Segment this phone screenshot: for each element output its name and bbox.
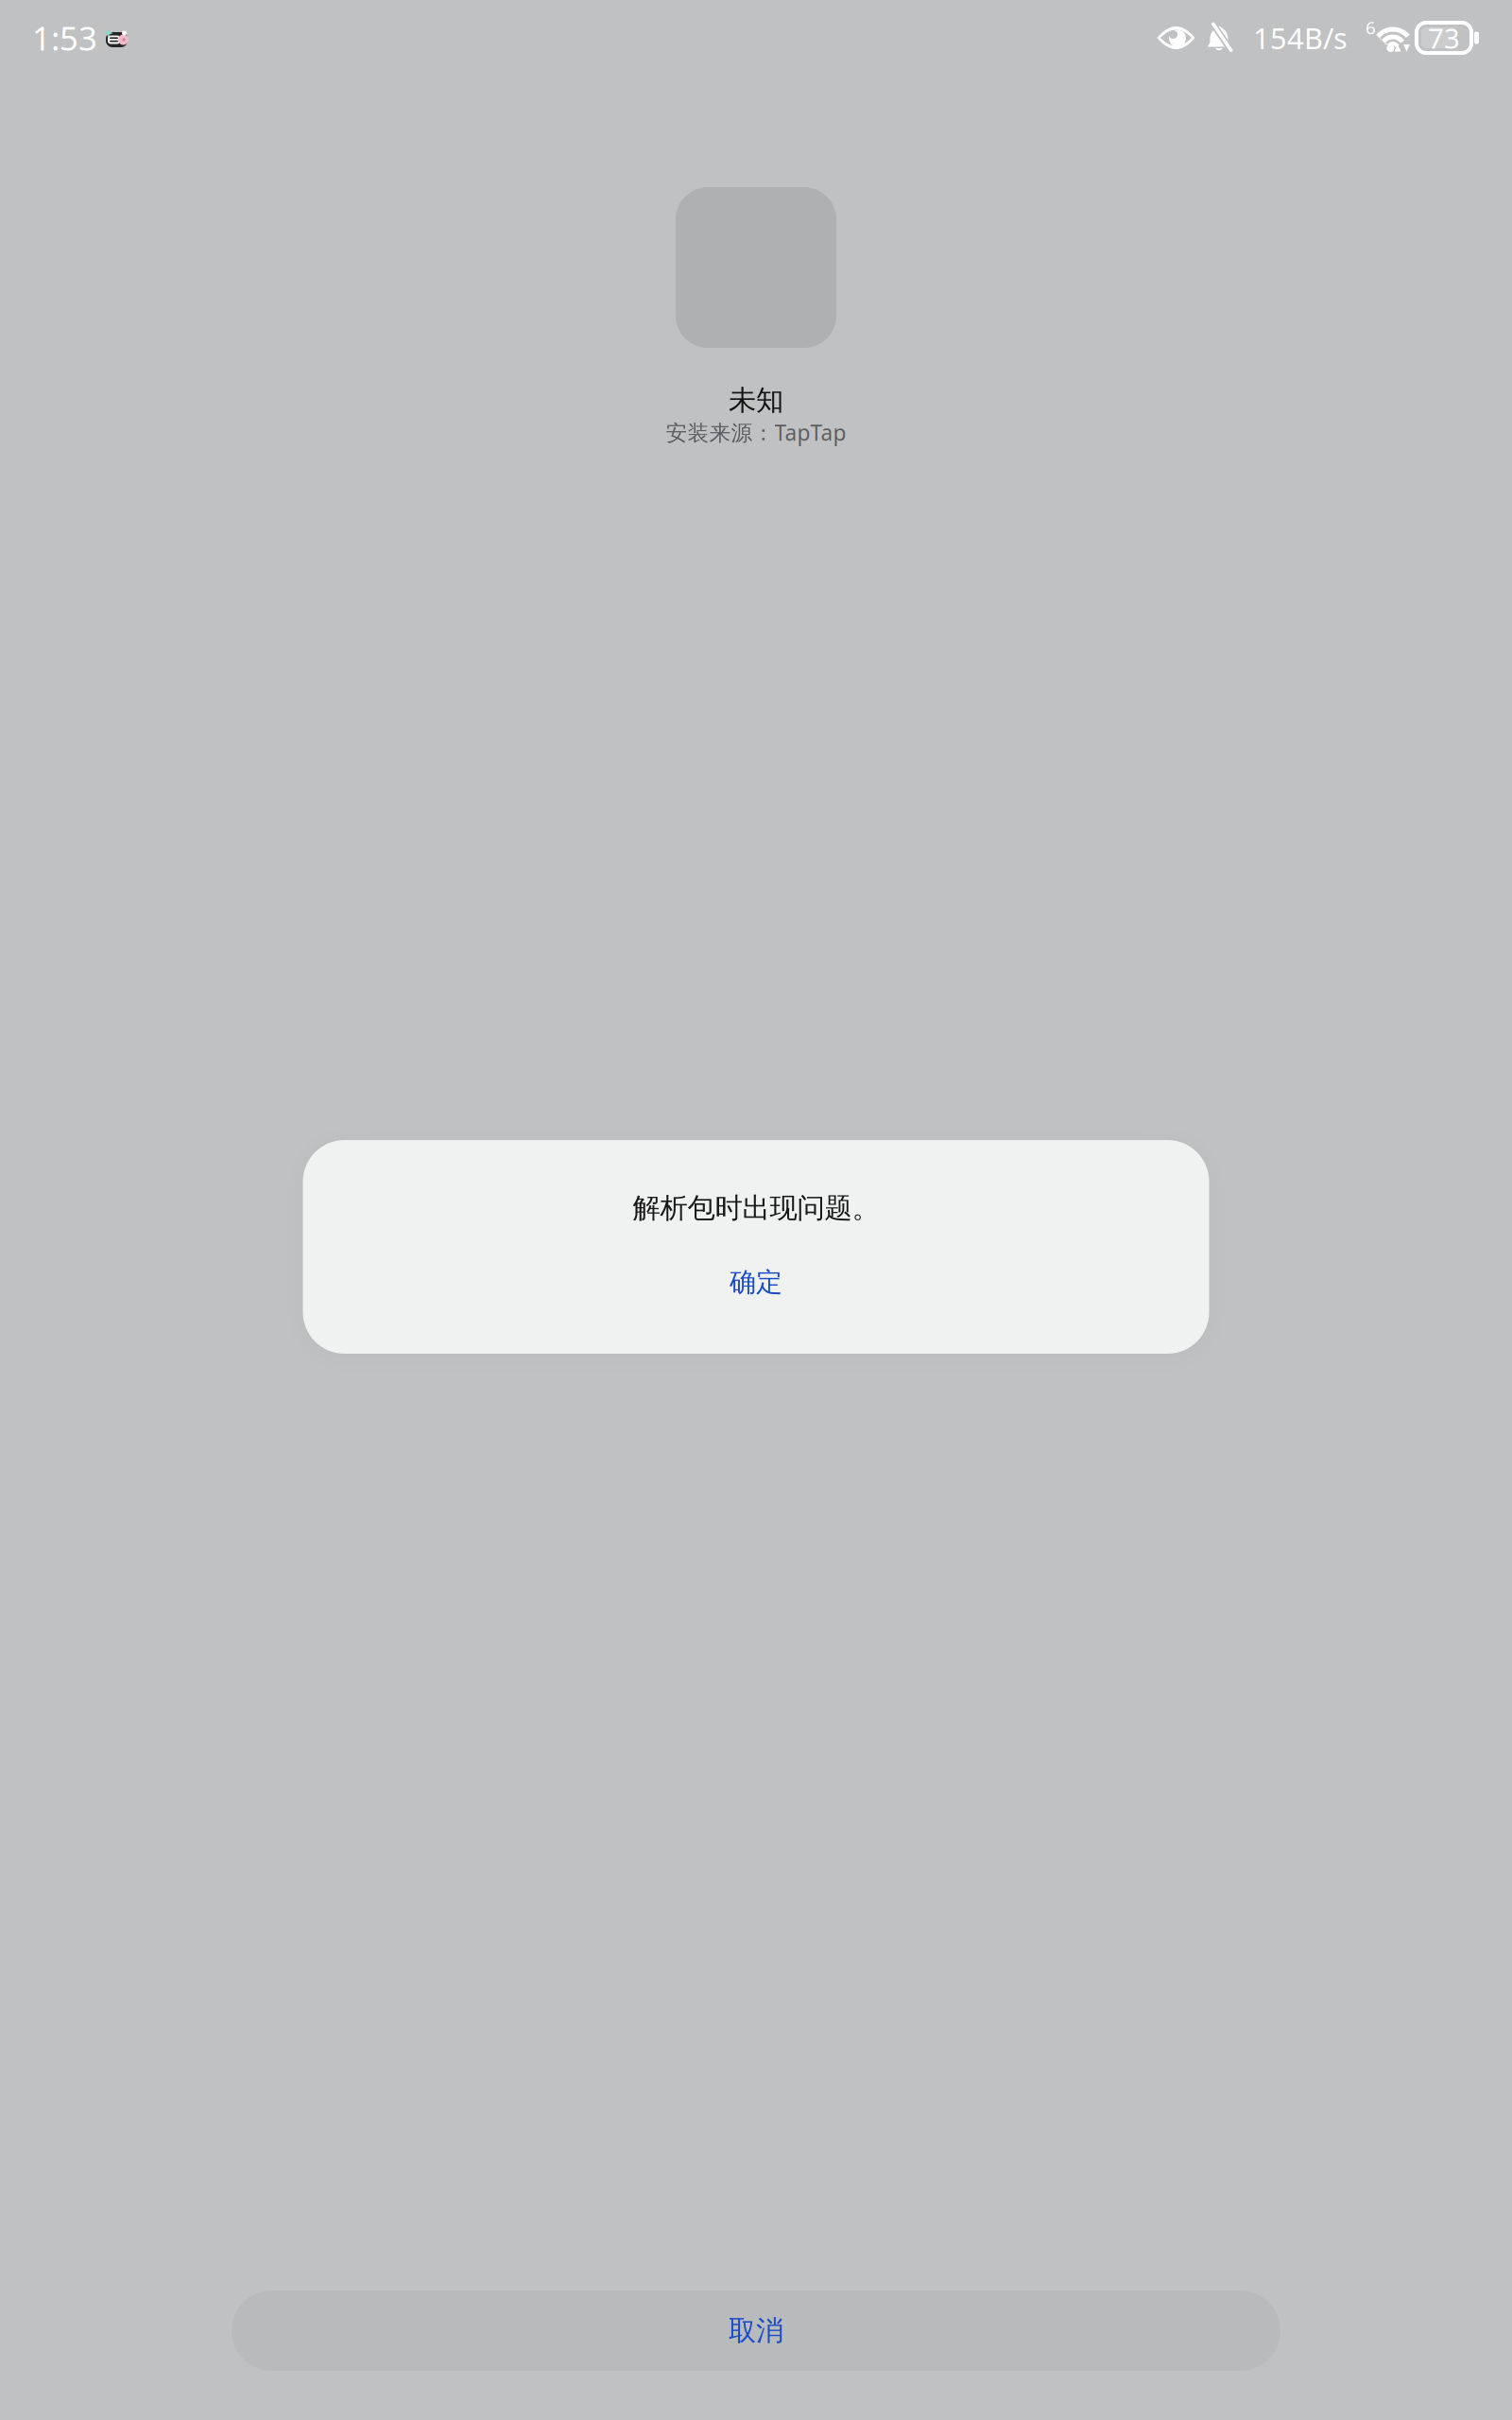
button[interactable]: 确定 xyxy=(303,1256,1209,1309)
staticText: 取消 xyxy=(729,2313,783,2348)
staticText: 确定 xyxy=(730,1266,782,1299)
staticText: 解析包时出现问题。 xyxy=(633,1191,879,1226)
button[interactable]: 取消 xyxy=(232,2290,1280,2371)
staticText: 未知 xyxy=(729,383,783,418)
staticText: 154B/s xyxy=(1253,18,1348,58)
staticText: 安装来源：TapTap xyxy=(666,418,846,447)
staticText: 73 xyxy=(1428,19,1460,57)
staticText: 1:53 xyxy=(32,16,97,60)
staticText: 6 xyxy=(1366,15,1376,39)
